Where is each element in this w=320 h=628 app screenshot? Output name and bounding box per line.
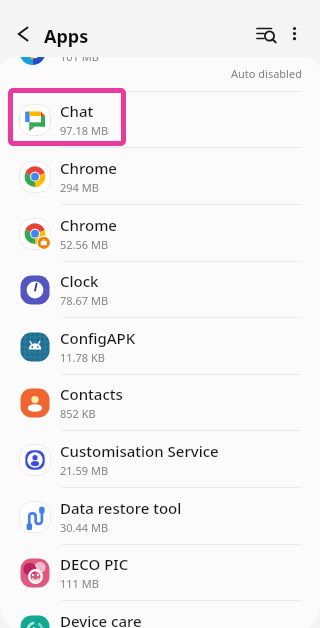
staticText: 101 MB (60, 57, 99, 64)
staticText: Apps (44, 24, 89, 49)
button[interactable]: ConfigAPK (0, 318, 320, 375)
button[interactable]: Chrome (0, 148, 320, 205)
staticText: 78.67 MB (60, 293, 109, 308)
staticText: DECO PIC (60, 554, 129, 574)
staticText: Chrome (60, 215, 117, 235)
button[interactable] (255, 25, 279, 49)
staticText: Device care (60, 611, 142, 628)
staticText: 21.59 MB (60, 463, 109, 478)
staticText: 52.56 MB (60, 237, 109, 252)
staticText: Chrome (60, 158, 117, 178)
staticText: 11.78 KB (60, 350, 105, 365)
button[interactable] (12, 26, 36, 50)
staticText: Chat (60, 101, 94, 121)
staticText: Auto disabled (231, 66, 302, 81)
staticText: ConfigAPK (60, 328, 136, 348)
button[interactable]: DECO PIC (0, 544, 320, 601)
staticText: 294 MB (60, 180, 99, 195)
button[interactable] (286, 25, 304, 43)
staticText: 852 KB (60, 406, 96, 421)
staticText: 30.44 MB (60, 520, 109, 535)
staticText: Customisation Service (60, 441, 219, 461)
button[interactable]: Device care (0, 601, 320, 628)
button[interactable]: Customisation Service (0, 431, 320, 488)
staticText: Data restore tool (60, 498, 182, 518)
staticText: Contacts (60, 384, 123, 404)
staticText: 111 MB (60, 576, 99, 591)
button[interactable]: Chrome (0, 205, 320, 262)
button[interactable]: Clock (0, 261, 320, 318)
staticText: Clock (60, 271, 99, 291)
button[interactable]: Chat (0, 91, 320, 148)
button[interactable]: Data restore tool (0, 488, 320, 545)
button[interactable]: Contacts (0, 374, 320, 431)
staticText: 97.18 MB (60, 123, 109, 138)
